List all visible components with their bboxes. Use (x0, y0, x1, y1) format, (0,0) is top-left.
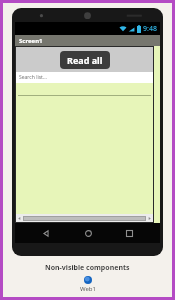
staticText: 9:48 (143, 24, 157, 34)
staticText: Web1 (80, 285, 96, 293)
button[interactable]: Recents (119, 223, 139, 243)
button[interactable]: Home (78, 223, 98, 243)
staticText: Screen1 (19, 37, 43, 45)
staticText: Non-visible components (45, 263, 130, 273)
button[interactable]: Back (36, 223, 56, 243)
button[interactable]: Read all (60, 51, 110, 69)
button[interactable]: Search list... (16, 72, 153, 83)
staticText: Read all (67, 54, 103, 66)
staticText: Search list... (19, 74, 47, 81)
